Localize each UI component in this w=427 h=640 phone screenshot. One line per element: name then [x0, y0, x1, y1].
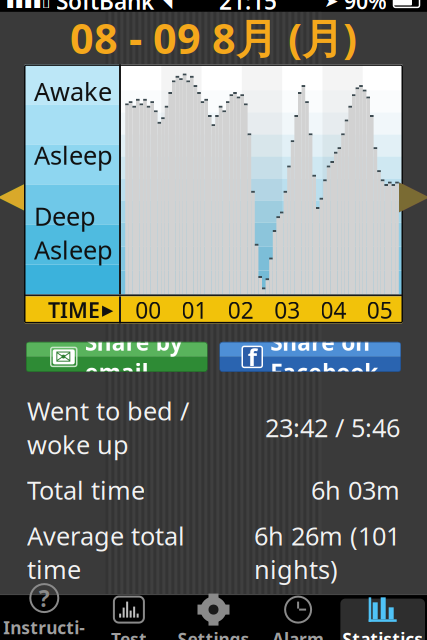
staticText: ✉ [55, 345, 72, 368]
staticText: ▶ [102, 302, 113, 318]
staticText: Alarm [272, 628, 324, 640]
button[interactable]: Next night [403, 64, 425, 324]
staticText: 02 [228, 295, 254, 325]
button[interactable]: Settings [171, 599, 256, 640]
staticText: ➤ [324, 0, 339, 11]
staticText: SoftBank [56, 0, 154, 16]
button[interactable]: Previous night [2, 64, 24, 324]
staticText: ◥ [159, 0, 172, 11]
button[interactable]: Test [87, 599, 171, 640]
staticText: Settings [177, 628, 249, 640]
staticText: 21:15 [219, 0, 277, 16]
staticText: ◀ [0, 171, 28, 217]
staticText: Asleep [34, 138, 113, 172]
staticText: 08 - 09 8月 (月) [70, 10, 357, 65]
staticText: 6h 26m (101 nights) [254, 519, 400, 586]
button[interactable]: ? [2, 599, 87, 640]
staticText: ? [39, 583, 50, 613]
button[interactable]: ✉ [26, 342, 207, 372]
staticText: ▶ [398, 171, 427, 217]
staticText: Share by email [85, 327, 183, 387]
button[interactable]: f [219, 342, 401, 372]
staticText: 01 [181, 295, 207, 325]
staticText: 90% [344, 0, 387, 15]
staticText: f [248, 341, 257, 373]
staticText: Went to bed / woke up [27, 394, 189, 461]
staticText: Statistics [342, 628, 423, 640]
staticText: ▮▮▮▮▯ [6, 0, 51, 10]
staticText: 00 [135, 295, 161, 325]
staticText: Awake [34, 74, 112, 108]
staticText: Share on Facebook [270, 327, 378, 387]
staticText: Test [111, 628, 147, 640]
staticText: TIME [48, 296, 100, 324]
staticText: 03 [274, 295, 300, 325]
button[interactable]: Alarm [256, 599, 340, 640]
staticText: 23:42 / 5:46 [265, 411, 400, 444]
staticText: 04 [320, 295, 346, 325]
staticText: Total time [27, 473, 145, 507]
staticText: Instructions [3, 616, 85, 640]
staticText: Average total time [27, 519, 185, 586]
button[interactable]: Statistics [340, 599, 425, 640]
staticText: 6h 03m [311, 473, 400, 507]
staticText: 05 [367, 295, 393, 325]
staticText: Deep [34, 199, 96, 233]
staticText: Asleep [34, 233, 113, 266]
